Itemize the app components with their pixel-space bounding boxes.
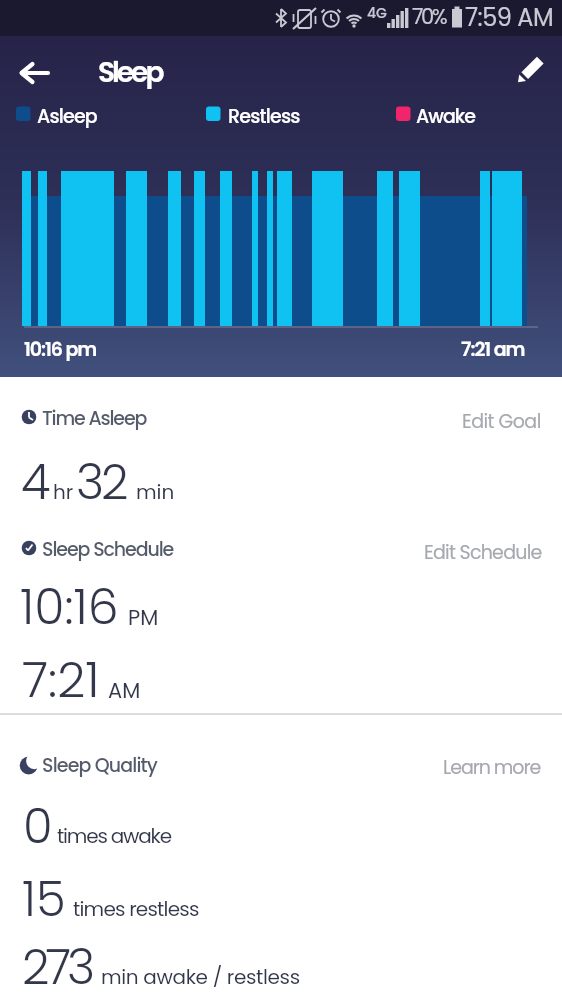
staticText: 0 [23,793,53,860]
staticText: 7:59 AM [465,1,554,35]
staticText: 7:21 am [461,336,525,363]
staticText: Edit Goal [462,408,541,434]
button[interactable]: Learn more [443,754,558,780]
staticText: PM [128,603,159,632]
staticText: Restless [228,103,300,130]
staticText: times awake [57,822,171,850]
staticText: 15 [22,866,66,933]
staticText: 10:16 pm [24,336,97,363]
staticText: 4G [367,3,387,23]
staticText: Sleep Quality [42,752,158,779]
staticText: 4 [21,449,51,516]
button[interactable]: Edit Schedule [424,539,559,565]
staticText: min [136,478,175,506]
staticText: hr [53,478,74,506]
staticText: Time Asleep [42,405,147,432]
staticText: 32 [76,449,126,516]
staticText: AM [108,676,141,705]
staticText: Awake [416,103,476,130]
staticText: Sleep [98,53,162,92]
button[interactable] [509,51,551,91]
button[interactable]: Edit Goal [462,408,557,434]
staticText: 10:16 [20,573,119,642]
staticText: 70% [412,2,446,31]
staticText: Edit Schedule [424,539,542,565]
staticText: 273 [22,934,92,999]
staticText: Sleep Schedule [42,536,174,563]
staticText: min awake / restless [101,963,300,991]
staticText: Learn more [443,754,541,780]
button[interactable] [10,55,56,91]
staticText: 7:21 [22,646,100,715]
staticText: Asleep [37,103,97,130]
staticText: times restless [73,895,199,923]
